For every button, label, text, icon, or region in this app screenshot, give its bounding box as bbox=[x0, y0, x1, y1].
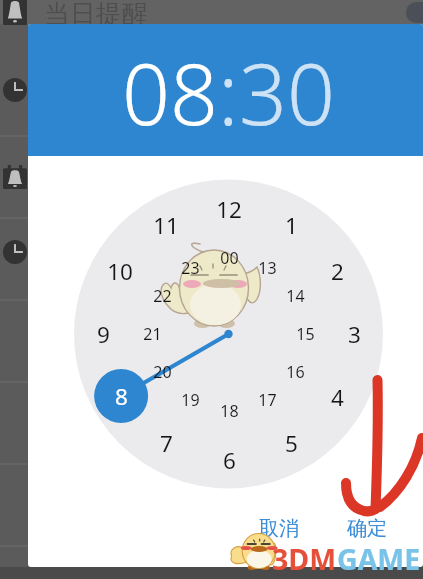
staticText: : bbox=[218, 35, 239, 149]
button[interactable]: 2 bbox=[315, 256, 359, 286]
staticText: 13 bbox=[258, 257, 277, 279]
staticText: 2 bbox=[331, 256, 344, 286]
button[interactable]: 19 bbox=[168, 385, 212, 415]
button[interactable]: 22 bbox=[140, 281, 184, 311]
other: Reminder bbox=[3, 0, 27, 25]
button[interactable]: 6 bbox=[207, 445, 251, 475]
button[interactable]: 11 bbox=[144, 210, 188, 240]
staticText: 23 bbox=[181, 257, 200, 279]
staticText: 30 bbox=[239, 35, 335, 149]
button[interactable]: 当日提醒 bbox=[44, 0, 148, 31]
staticText: 3DM bbox=[272, 540, 337, 579]
button[interactable]: 14 bbox=[273, 281, 317, 311]
staticText: 6 bbox=[223, 445, 236, 475]
staticText: 10 bbox=[107, 256, 133, 286]
staticText: 9 bbox=[97, 319, 110, 349]
staticText: 00 bbox=[220, 247, 239, 269]
button[interactable]: 18 bbox=[207, 396, 251, 426]
button[interactable]: 00 bbox=[207, 243, 251, 273]
staticText: 19 bbox=[181, 389, 200, 411]
staticText: 8 bbox=[115, 381, 128, 411]
staticText: 17 bbox=[258, 389, 277, 411]
button[interactable]: 4 bbox=[315, 382, 359, 412]
staticText: 当日提醒 bbox=[44, 0, 148, 31]
button[interactable]: 7 bbox=[144, 428, 188, 458]
staticText: 5 bbox=[285, 428, 298, 458]
staticText: 11 bbox=[153, 210, 179, 240]
button[interactable]: 17 bbox=[245, 385, 289, 415]
staticText: 08 bbox=[122, 35, 218, 149]
staticText: 确定 bbox=[347, 516, 387, 541]
staticText: 取消 bbox=[259, 516, 299, 541]
button[interactable]: 3 bbox=[332, 319, 376, 349]
staticText: 16 bbox=[286, 361, 305, 383]
button[interactable]: 15 bbox=[283, 319, 327, 349]
staticText: 14 bbox=[286, 285, 305, 307]
staticText: 18 bbox=[220, 400, 239, 422]
button[interactable]: 20 bbox=[140, 357, 184, 387]
staticText: 3 bbox=[348, 319, 361, 349]
button[interactable]: 23 bbox=[168, 253, 212, 283]
other: Reminder bbox=[3, 165, 27, 189]
staticText: 22 bbox=[153, 285, 172, 307]
button[interactable]: 12 bbox=[207, 194, 251, 224]
staticText: GAME bbox=[337, 540, 421, 579]
button[interactable]: 5 bbox=[269, 428, 313, 458]
staticText: 4 bbox=[331, 382, 344, 412]
staticText: 21 bbox=[143, 323, 162, 345]
button[interactable]: 16 bbox=[273, 357, 317, 387]
staticText: 12 bbox=[216, 194, 242, 224]
button[interactable]: 21 bbox=[130, 319, 174, 349]
other: Time bbox=[3, 240, 27, 264]
button[interactable]: 13 bbox=[245, 253, 289, 283]
staticText: 1 bbox=[285, 210, 298, 240]
button[interactable]: 9 bbox=[81, 319, 125, 349]
other: Time bbox=[3, 78, 27, 102]
staticText: 15 bbox=[296, 323, 315, 345]
button[interactable]: 8 bbox=[99, 381, 143, 411]
staticText: 7 bbox=[160, 428, 173, 458]
button[interactable]: 取消 bbox=[249, 511, 309, 546]
button[interactable]: 确定 bbox=[337, 511, 397, 546]
other: More bbox=[406, 2, 423, 23]
button[interactable]: 08 bbox=[122, 35, 218, 149]
button[interactable]: 10 bbox=[98, 256, 142, 286]
button[interactable]: 30 bbox=[239, 35, 335, 149]
button[interactable]: 1 bbox=[269, 210, 313, 240]
staticText: 20 bbox=[153, 361, 172, 383]
